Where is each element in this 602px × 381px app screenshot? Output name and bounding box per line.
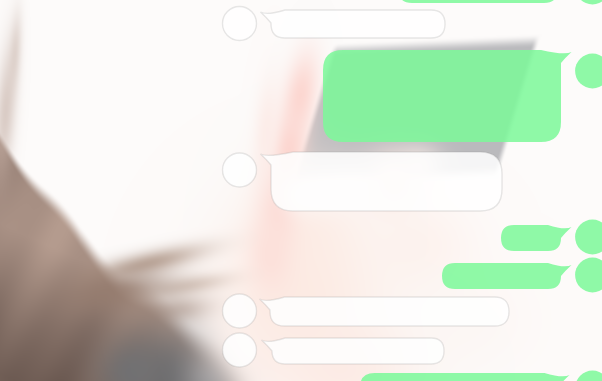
other: Chat conversation xyxy=(0,0,602,381)
